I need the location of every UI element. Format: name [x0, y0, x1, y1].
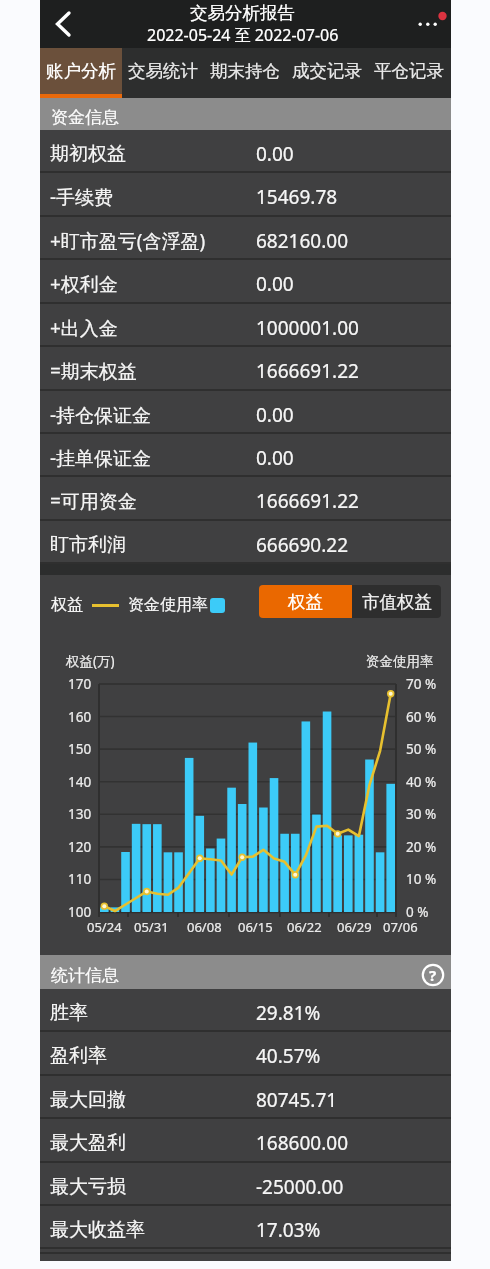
staticText: 06/29 — [337, 918, 372, 936]
staticText: 17.03% — [256, 1217, 321, 1243]
staticText: +权利金 — [50, 271, 118, 297]
staticText: 2022-05-24 至 2022-07-06 — [147, 24, 339, 46]
staticText: +盯市盈亏(含浮盈) — [50, 228, 206, 254]
staticText: 盯市利润 — [50, 533, 126, 557]
staticText: 30 % — [406, 805, 437, 823]
staticText: 140 — [68, 773, 92, 791]
button[interactable]: 权益 — [259, 585, 352, 618]
staticText: 最大盈利 — [50, 1131, 126, 1155]
staticText: 1666691.22 — [256, 488, 359, 514]
staticText: =可用资金 — [50, 488, 137, 514]
staticText: 60 % — [406, 708, 437, 726]
staticText: 50 % — [406, 740, 437, 758]
staticText: 06/15 — [238, 918, 273, 936]
staticText: 最大亏损 — [50, 1175, 126, 1199]
button[interactable] — [42, 0, 86, 48]
button[interactable]: 期末持仓 — [204, 48, 286, 94]
staticText: 40 % — [406, 773, 437, 791]
staticText: 100 — [68, 903, 92, 921]
staticText: 最大收益率 — [50, 1218, 145, 1242]
staticText: 胜率 — [50, 1001, 88, 1025]
staticText: -手续费 — [50, 184, 114, 210]
staticText: 07/06 — [383, 918, 418, 936]
staticText: ? — [429, 965, 437, 985]
staticText: 06/22 — [287, 918, 322, 936]
button[interactable]: 市值权益 — [352, 585, 441, 618]
staticText: 成交记录 — [292, 60, 362, 82]
staticText: 120 — [68, 838, 92, 856]
staticText: 0.00 — [256, 141, 294, 167]
staticText: 05/24 — [87, 918, 122, 936]
staticText: +出入金 — [50, 315, 118, 341]
staticText: 统计信息 — [51, 965, 119, 986]
staticText: 市值权益 — [362, 591, 432, 613]
staticText: 168600.00 — [256, 1130, 349, 1156]
staticText: 平仓记录 — [374, 60, 444, 82]
staticText: 160 — [68, 708, 92, 726]
staticText: 130 — [68, 805, 92, 823]
staticText: 资金信息 — [51, 107, 119, 128]
staticText: -持仓保证金 — [50, 402, 152, 428]
staticText: 29.81% — [256, 1000, 321, 1026]
staticText: 期末持仓 — [210, 60, 280, 82]
staticText: 682160.00 — [256, 228, 349, 254]
staticText: 40.57% — [256, 1043, 321, 1069]
staticText: 交易分析报告 — [190, 2, 295, 24]
staticText: 0.00 — [256, 402, 294, 428]
button[interactable] — [410, 0, 451, 48]
staticText: 交易统计 — [128, 60, 198, 82]
button[interactable]: 平仓记录 — [368, 48, 450, 94]
staticText: 05/31 — [134, 918, 169, 936]
staticText: 0.00 — [256, 271, 294, 297]
button[interactable]: 账户分析 — [40, 48, 122, 94]
staticText: 666690.22 — [256, 532, 349, 558]
staticText: 10 % — [406, 870, 437, 888]
staticText: 资金使用率 — [128, 595, 208, 615]
staticText: 0.00 — [256, 445, 294, 471]
staticText: 权益 — [288, 591, 323, 613]
staticText: 0 % — [406, 903, 429, 921]
button[interactable]: 交易统计 — [122, 48, 204, 94]
staticText: 15469.78 — [256, 184, 338, 210]
staticText: 权益 — [51, 595, 83, 615]
staticText: 170 — [68, 675, 92, 693]
staticText: 70 % — [406, 675, 437, 693]
staticText: 20 % — [406, 838, 437, 856]
staticText: 110 — [68, 870, 92, 888]
button[interactable]: ? — [422, 964, 444, 986]
staticText: -挂单保证金 — [50, 445, 152, 471]
staticText: 1000001.00 — [256, 315, 359, 341]
staticText: 期初权益 — [50, 142, 126, 166]
staticText: =期末权益 — [50, 358, 137, 384]
button[interactable]: 成交记录 — [286, 48, 368, 94]
staticText: 150 — [68, 740, 92, 758]
staticText: 盈利率 — [50, 1044, 107, 1068]
staticText: 最大回撤 — [50, 1088, 126, 1112]
staticText: 80745.71 — [256, 1087, 338, 1113]
staticText: -25000.00 — [256, 1174, 344, 1200]
staticText: 账户分析 — [46, 60, 116, 82]
staticText: 1666691.22 — [256, 358, 359, 384]
staticText: 资金使用率 — [366, 653, 434, 670]
staticText: 06/08 — [187, 918, 222, 936]
staticText: 权益(万) — [66, 652, 115, 670]
